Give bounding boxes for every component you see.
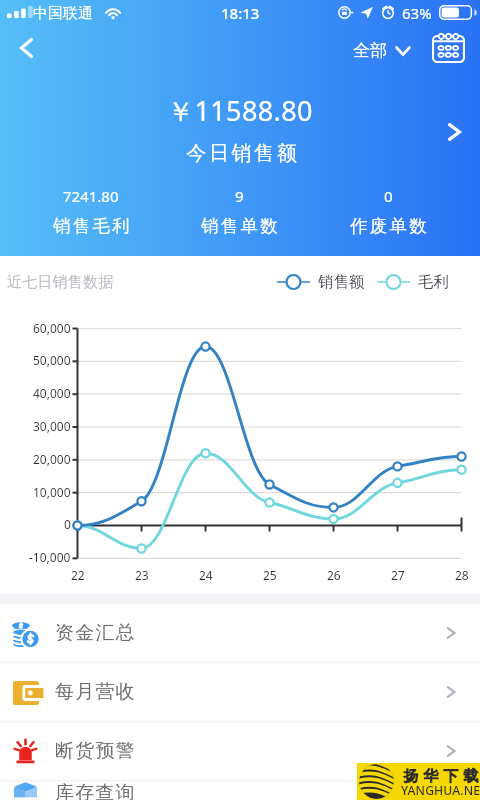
button[interactable]: 库存查询 <box>0 781 480 800</box>
button[interactable]: 断货预警 <box>0 722 480 780</box>
button[interactable]: 每月营收 <box>0 663 480 721</box>
staticText: 9 <box>235 186 244 206</box>
staticText: 27 <box>391 567 405 583</box>
staticText: 销售单数 <box>201 215 280 237</box>
staticText: 7241.80 <box>63 186 119 206</box>
staticText: 20,000 <box>33 451 71 467</box>
staticText: 库存查询 <box>55 781 136 800</box>
staticText: 10,000 <box>33 484 71 500</box>
staticText: 18:13 <box>221 3 260 23</box>
staticText: 0 <box>384 186 393 206</box>
staticText: 28 <box>455 567 469 583</box>
staticText: ￥11588.80 <box>167 92 313 129</box>
button[interactable]: 9 <box>165 186 314 237</box>
staticText: 30,000 <box>33 418 71 434</box>
staticText: 全部 <box>353 40 387 61</box>
staticText: 0 <box>64 516 71 532</box>
staticText: 60,000 <box>33 320 71 336</box>
staticText: 中国联通 <box>33 4 93 23</box>
staticText: 销售额 <box>318 272 365 292</box>
staticText: 50,000 <box>33 352 71 368</box>
button[interactable]: 0 <box>314 186 463 237</box>
staticText: -10,000 <box>29 549 71 565</box>
staticText: 25 <box>263 567 277 583</box>
staticText: 今日销售额 <box>185 141 298 166</box>
button[interactable]: Back <box>4 26 48 70</box>
staticText: 资金汇总 <box>55 621 136 645</box>
staticText: 22 <box>71 567 85 583</box>
button[interactable]: 全部 <box>349 36 415 65</box>
staticText: 63% <box>402 3 432 23</box>
staticText: 销售毛利 <box>53 215 132 237</box>
button[interactable]: More <box>434 112 474 152</box>
staticText: 作废单数 <box>350 215 429 237</box>
staticText: 近七日销售数据 <box>7 273 114 292</box>
staticText: 断货预警 <box>55 739 136 763</box>
staticText: 扬华下载 <box>401 767 480 786</box>
button[interactable]: 资金汇总 <box>0 604 480 662</box>
staticText: 26 <box>327 567 341 583</box>
staticText: 40,000 <box>33 385 71 401</box>
staticText: 毛利 <box>418 272 449 292</box>
staticText: 24 <box>199 567 213 583</box>
staticText: 每月营收 <box>55 680 136 704</box>
button[interactable]: 7241.80 <box>17 186 165 237</box>
button[interactable]: Calendar <box>425 26 471 72</box>
staticText: YANGHUA.NET <box>401 782 480 799</box>
staticText: 23 <box>135 567 149 583</box>
